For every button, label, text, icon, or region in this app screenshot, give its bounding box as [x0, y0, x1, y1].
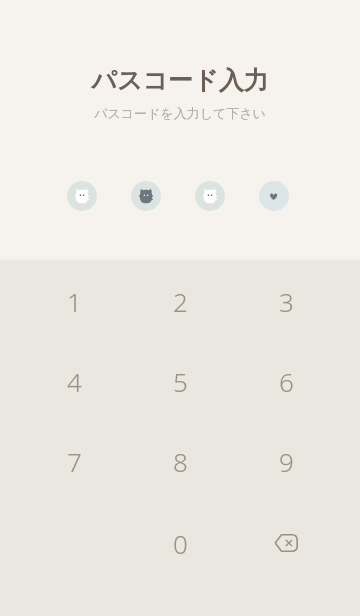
button[interactable]: Backspace: [233, 503, 339, 583]
staticText: パスコード入力: [91, 65, 269, 96]
other: Passcode digit entered: [131, 181, 161, 211]
staticText: 5: [173, 364, 188, 399]
button[interactable]: 7: [21, 421, 127, 501]
button[interactable]: 6: [233, 341, 339, 421]
staticText: 1: [67, 284, 82, 319]
staticText: 7: [67, 444, 82, 479]
button[interactable]: 4: [21, 341, 127, 421]
staticText: 0: [173, 526, 188, 561]
button[interactable]: 1: [21, 261, 127, 341]
staticText: 4: [67, 364, 82, 399]
button[interactable]: 8: [127, 421, 233, 501]
staticText: 9: [279, 444, 294, 479]
other: Passcode digit: [195, 181, 225, 211]
other: Passcode digit: [67, 181, 97, 211]
button[interactable]: 2: [127, 261, 233, 341]
button[interactable]: 5: [127, 341, 233, 421]
staticText: パスコードを入力して下さい: [94, 105, 266, 121]
button[interactable]: 9: [233, 421, 339, 501]
staticText: 2: [173, 284, 188, 319]
button[interactable]: 3: [233, 261, 339, 341]
staticText: 8: [173, 444, 188, 479]
staticText: 6: [279, 364, 294, 399]
button[interactable]: 0: [127, 503, 233, 583]
staticText: 3: [279, 284, 294, 319]
other: Passcode digit: [259, 181, 289, 211]
